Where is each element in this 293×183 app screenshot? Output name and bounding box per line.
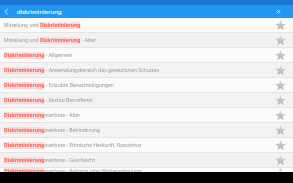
button[interactable]: Add to favourites: [267, 168, 293, 172]
button[interactable]: Add to favourites: [267, 108, 293, 122]
staticText: diskriminierung: [17, 8, 62, 16]
button[interactable]: Clear search: [263, 5, 293, 18]
staticText: Mitteilung und Diskriminierung - Alter: [4, 37, 96, 44]
button[interactable]: Diskriminierungsverbote - Alter: [0, 108, 293, 122]
staticText: Diskriminierung - Anwendungsbereich des …: [4, 67, 160, 74]
button[interactable]: Diskriminierungsverbote - Behinderung: [0, 123, 293, 137]
button[interactable]: Add to favourites: [267, 153, 293, 167]
staticText: Diskriminierung - Erlaubte Benachteiligu…: [4, 82, 114, 89]
button[interactable]: Add to favourites: [267, 78, 293, 92]
button[interactable]: Add to favourites: [267, 123, 293, 137]
button[interactable]: Add to favourites: [267, 48, 293, 62]
button[interactable]: Add to favourites: [267, 18, 293, 32]
button[interactable]: Diskriminierungsverbote - Religion oder …: [0, 168, 293, 172]
button[interactable]: Mitteilung und Diskriminierung - Alter: [0, 33, 293, 47]
button[interactable]: Back: [0, 5, 13, 18]
staticText: Diskriminierungsverbote - Ethnische Herk…: [4, 142, 142, 149]
button[interactable]: Add to favourites: [267, 93, 293, 107]
button[interactable]: Diskriminierung - Allgemein: [0, 48, 293, 62]
staticText: Mitteilung und Diskriminierung: [4, 22, 81, 29]
staticText: Diskriminierung - Allgemein: [4, 52, 73, 59]
button[interactable]: Diskriminierung - Rechte Betroffener: [0, 93, 293, 107]
staticText: Diskriminierungsverbote - Alter: [4, 112, 81, 119]
staticText: Diskriminierungsverbote - Religion oder …: [4, 168, 142, 172]
button[interactable]: Add to favourites: [267, 33, 293, 47]
button[interactable]: Add to favourites: [267, 63, 293, 77]
button[interactable]: Diskriminierung - Erlaubte Benachteiligu…: [0, 78, 293, 92]
button[interactable]: Diskriminierungsverbote - Geschlecht: [0, 153, 293, 167]
button[interactable]: Add to favourites: [267, 138, 293, 152]
button[interactable]: Diskriminierung - Anwendungsbereich des …: [0, 63, 293, 77]
staticText: Diskriminierungsverbote - Behinderung: [4, 127, 101, 134]
button[interactable]: Diskriminierungsverbote - Ethnische Herk…: [0, 138, 293, 152]
staticText: Diskriminierungsverbote - Geschlecht: [4, 157, 95, 164]
button[interactable]: Mitteilung und Diskriminierung: [0, 18, 293, 32]
staticText: Diskriminierung - Rechte Betroffener: [4, 97, 94, 104]
